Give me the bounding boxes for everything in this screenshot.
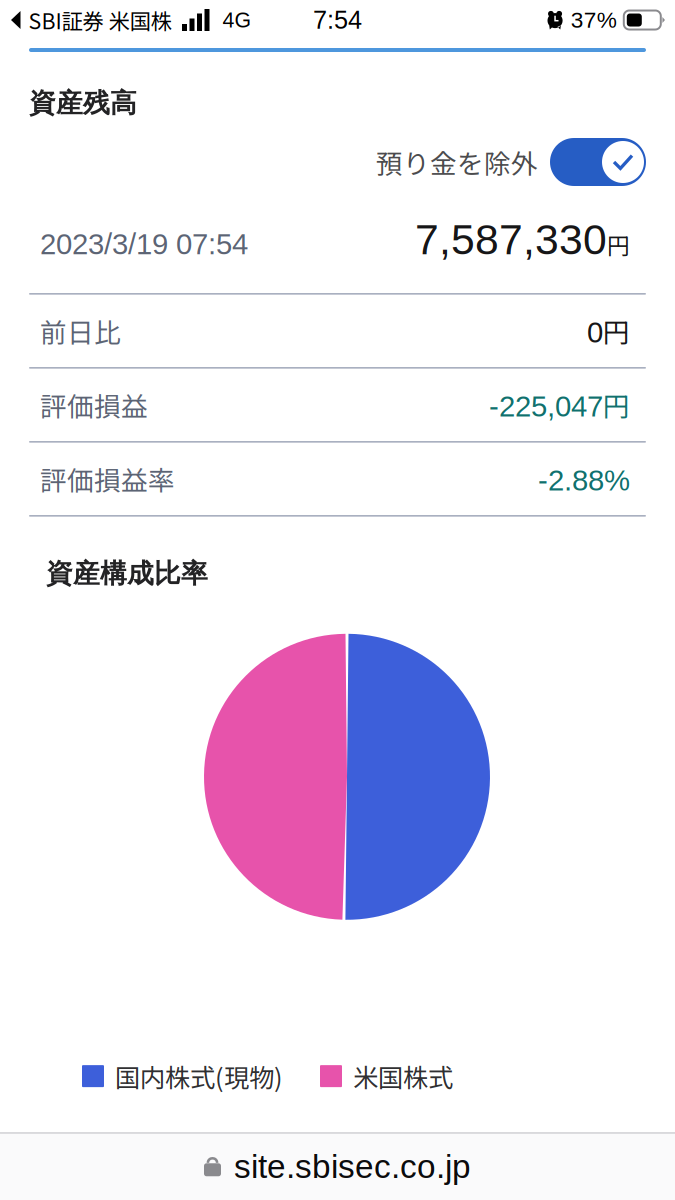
button[interactable]: 預り金を除外 — [376, 138, 646, 186]
staticText: SBI証券 米国株 — [28, 5, 171, 35]
staticText: site.sbisec.co.jp — [234, 1148, 471, 1185]
staticText: 0 — [587, 316, 603, 349]
staticText: 2023/3/19 07:54 — [40, 228, 248, 260]
staticText: 円 — [607, 228, 630, 261]
staticText: 円 — [603, 311, 630, 350]
staticText: 7,587,330 — [415, 216, 607, 263]
staticText: 円 — [603, 385, 630, 424]
staticText: 国内株式(現物) — [115, 1058, 283, 1094]
staticText: 評価損益 — [40, 385, 148, 424]
staticText: 資産残高 — [29, 86, 137, 120]
button[interactable]: site.sbisec.co.jp — [0, 1134, 675, 1200]
staticText: 資産構成比率 — [46, 557, 208, 590]
staticText: 4G — [222, 8, 251, 32]
staticText: 37% — [571, 7, 617, 33]
staticText: 前日比 — [40, 311, 121, 350]
staticText: -225,047 — [489, 390, 603, 423]
staticText: 7:54 — [313, 6, 362, 34]
staticText: -2.88% — [538, 464, 630, 497]
staticText: 評価損益率 — [40, 459, 175, 498]
staticText: 預り金を除外 — [376, 143, 538, 181]
staticText: 米国株式 — [353, 1058, 453, 1094]
